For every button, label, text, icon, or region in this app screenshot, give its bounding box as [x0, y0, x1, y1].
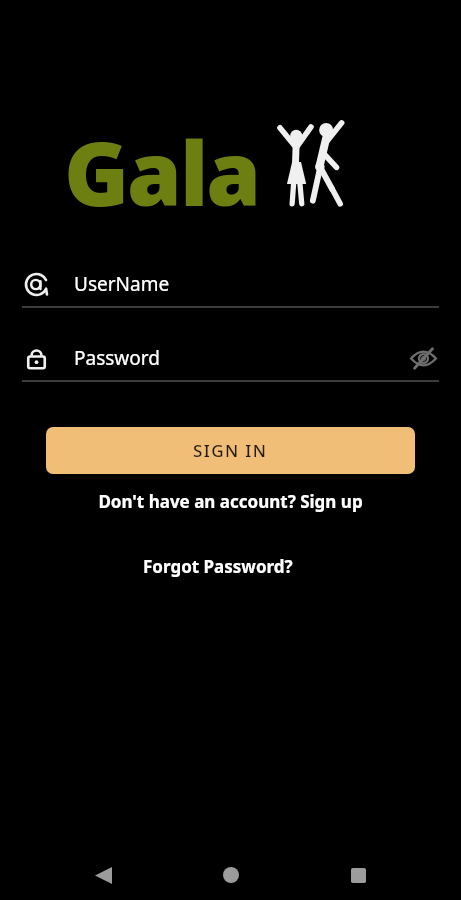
button[interactable]: Show password — [407, 342, 439, 374]
button[interactable]: Don't have an account? Sign up — [0, 490, 461, 513]
button[interactable]: Forgot Password? — [0, 555, 435, 578]
staticText: UserName — [74, 271, 170, 297]
staticText: Password — [74, 345, 160, 371]
button[interactable]: Password — [22, 336, 439, 382]
button[interactable]: SIGN IN — [46, 427, 415, 474]
staticText: Don't have an account? Sign up — [98, 490, 363, 513]
button[interactable]: UserName — [22, 262, 439, 308]
button[interactable]: Home — [207, 851, 255, 899]
staticText: Forgot Password? — [143, 555, 293, 578]
other: Gala logo — [274, 117, 348, 207]
staticText: Gala — [64, 112, 260, 212]
button[interactable]: Back — [79, 851, 127, 899]
staticText: SIGN IN — [193, 439, 268, 462]
button[interactable]: Recent apps — [334, 851, 382, 899]
